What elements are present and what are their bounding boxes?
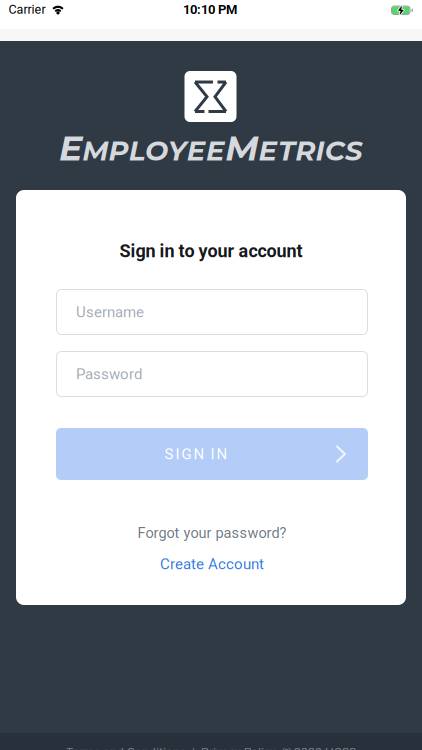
textField[interactable]: Username — [76, 303, 368, 321]
button[interactable]: Forgot your password? — [137, 524, 286, 541]
staticText: Create Account — [160, 555, 264, 573]
staticText: Carrier — [8, 2, 45, 17]
staticText: Password — [76, 365, 142, 383]
staticText: Terms and Conditions | Privacy Policy © … — [66, 745, 356, 750]
textField[interactable]: Password — [76, 365, 368, 383]
staticText: Username — [76, 303, 144, 321]
staticText: EMPLOYEEMETRICS — [59, 127, 363, 169]
staticText: Sign in to your account — [119, 240, 302, 262]
staticText: Username — [76, 303, 144, 321]
staticText: S I G N I N — [164, 445, 227, 463]
button[interactable]: Create Account — [160, 555, 264, 573]
button[interactable]: S I G N I N — [56, 428, 368, 480]
staticText: 10:10 PM — [183, 2, 237, 17]
staticText: Forgot your password? — [137, 524, 286, 541]
staticText: Password — [76, 365, 142, 383]
